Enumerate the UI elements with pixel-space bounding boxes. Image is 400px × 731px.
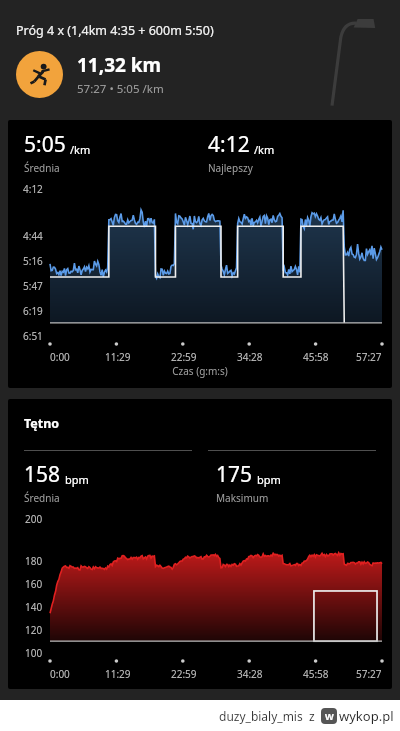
staticText: 5:16 xyxy=(23,254,43,268)
staticText: Średnia xyxy=(24,491,60,505)
staticText: 120 xyxy=(25,623,43,637)
button[interactable]: 5:05 xyxy=(8,120,392,388)
staticText: Maksimum xyxy=(216,491,269,505)
staticText: 34:28 xyxy=(237,667,263,681)
staticText: /km xyxy=(254,142,275,157)
staticText: 4:12 xyxy=(208,130,250,159)
staticText: /km xyxy=(70,142,91,157)
staticText: 22:59 xyxy=(171,350,197,364)
staticText: 34:28 xyxy=(237,350,263,364)
staticText: 57:27 • 5:05 /km xyxy=(77,81,164,97)
staticText: 57:27 xyxy=(356,667,382,681)
staticText: bpm xyxy=(65,472,89,487)
staticText: 180 xyxy=(25,554,43,568)
staticText: 57:27 xyxy=(356,350,382,364)
staticText: 0:00 xyxy=(50,667,70,681)
staticText: Czas (g:m:s) xyxy=(8,364,392,378)
staticText: Próg 4 x (1,4km 4:35 + 600m 5:50) xyxy=(16,22,214,39)
staticText: 45:58 xyxy=(303,667,329,681)
staticText: Najlepszy xyxy=(208,161,253,175)
staticText: duzy_bialy_mis z xyxy=(219,708,315,724)
staticText: 175 xyxy=(216,460,253,489)
staticText: 11:29 xyxy=(105,350,131,364)
staticText: Tętno xyxy=(24,415,60,432)
staticText: bpm xyxy=(257,472,281,487)
staticText: W xyxy=(325,710,334,722)
staticText: 11:29 xyxy=(105,667,131,681)
staticText: 6:51 xyxy=(23,329,43,343)
staticText: 100 xyxy=(25,646,43,660)
staticText: 11,32 km xyxy=(77,52,162,78)
staticText: 6:19 xyxy=(23,304,43,318)
staticText: 22:59 xyxy=(171,667,197,681)
staticText: 160 xyxy=(25,577,43,591)
staticText: 0:00 xyxy=(50,350,70,364)
staticText: wykop.pl xyxy=(339,707,394,725)
button[interactable]: Running activity xyxy=(16,51,63,98)
staticText: 158 xyxy=(24,460,61,489)
staticText: 140 xyxy=(25,600,43,614)
staticText: 4:12 xyxy=(23,182,43,196)
staticText: 5:05 xyxy=(24,130,66,159)
staticText: 200 xyxy=(25,512,43,526)
staticText: 5:47 xyxy=(23,279,43,293)
button[interactable]: Tętno xyxy=(8,399,392,689)
staticText: 45:58 xyxy=(303,350,329,364)
staticText: Średnia xyxy=(24,161,60,175)
staticText: 4:44 xyxy=(23,229,43,243)
